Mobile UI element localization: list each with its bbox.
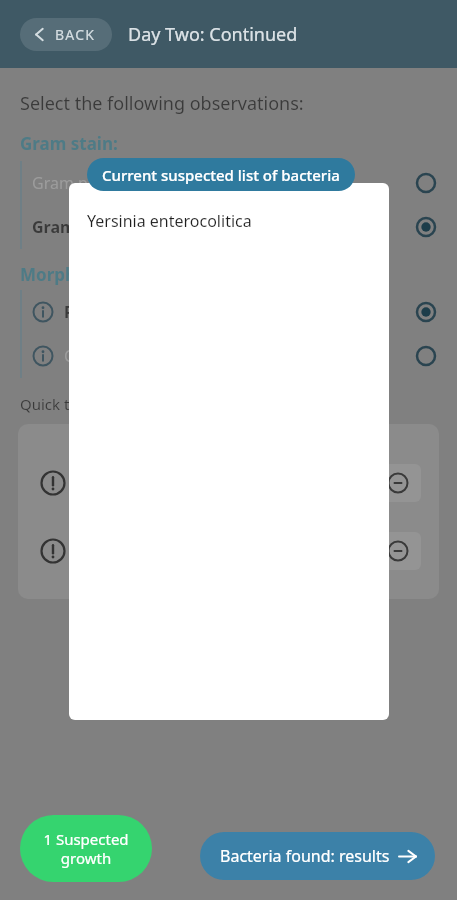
staticText: Day Two: Continued — [128, 22, 298, 47]
other: Gram positive — [415, 172, 437, 194]
button[interactable]: Info — [18, 460, 439, 506]
button[interactable]: Cocci — [0, 334, 457, 378]
button[interactable]: 1 Suspected growth — [20, 815, 152, 882]
staticText: BACK — [55, 25, 96, 44]
other: Gram negative — [415, 216, 437, 238]
other: Info — [40, 470, 66, 496]
staticText: Gram positive — [32, 172, 137, 194]
button[interactable]: Option — [375, 532, 421, 570]
other: Cocci — [415, 345, 437, 367]
button[interactable]: Yersinia enterocolitica — [87, 210, 252, 232]
button[interactable]: Option — [375, 464, 421, 502]
staticText: Gram negative — [32, 216, 150, 238]
button[interactable]: Gram positive — [0, 161, 457, 205]
other: Info — [40, 538, 66, 564]
staticText: Cocci — [64, 345, 104, 367]
button[interactable]: Rods — [0, 290, 457, 334]
staticText: Gram stain: — [20, 132, 118, 155]
button[interactable]: BACK — [20, 18, 112, 51]
staticText: Bacteria found: results — [220, 845, 390, 867]
staticText: Current suspected list of bacteria — [102, 165, 340, 185]
staticText: Select the following observations: — [20, 91, 304, 116]
other: Rods — [415, 301, 437, 323]
button[interactable]: Current suspected list of bacteria — [87, 158, 355, 191]
button[interactable]: Info — [18, 528, 439, 574]
staticText: Morphology: — [20, 263, 128, 286]
staticText: 1 Suspected growth — [43, 829, 129, 868]
staticText: Quick tests: — [20, 394, 102, 414]
button[interactable]: Gram negative — [0, 205, 457, 249]
staticText: Rods — [64, 301, 103, 323]
button[interactable]: Bacteria found: results — [200, 832, 435, 880]
